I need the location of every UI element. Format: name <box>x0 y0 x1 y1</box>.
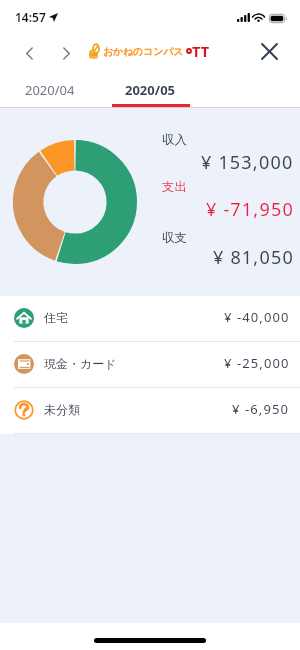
staticText: ¥ -40,000 <box>224 308 290 326</box>
button[interactable]: Next month <box>48 34 84 70</box>
button[interactable]: 未分類 <box>0 388 300 433</box>
button[interactable]: 住宅 <box>0 296 300 341</box>
staticText: 2020/04 <box>25 81 75 99</box>
button[interactable]: Previous month <box>11 34 47 70</box>
staticText: 14:57 <box>15 9 46 25</box>
button[interactable]: 現金・カード <box>0 342 300 387</box>
staticText: ¥ 81,050 <box>213 245 294 270</box>
staticText: 収入 <box>162 132 187 148</box>
staticText: 現金・カード <box>44 356 117 371</box>
staticText: TT <box>192 41 210 61</box>
staticText: ¥ -71,950 <box>206 197 294 222</box>
staticText: 2020/05 <box>125 81 176 99</box>
staticText: おかねのコンパス <box>103 46 184 58</box>
staticText: 収支 <box>162 230 187 246</box>
staticText: ¥ -25,000 <box>224 354 290 372</box>
staticText: 未分類 <box>44 402 80 417</box>
button[interactable]: 2020/04 <box>0 74 100 107</box>
button[interactable]: 2020/05 <box>100 74 200 107</box>
staticText: 支出 <box>162 179 187 195</box>
staticText: ¥ 153,000 <box>201 150 294 175</box>
staticText: ¥ -6,950 <box>232 400 290 418</box>
button[interactable]: Close <box>252 34 286 68</box>
staticText: 住宅 <box>44 310 68 325</box>
